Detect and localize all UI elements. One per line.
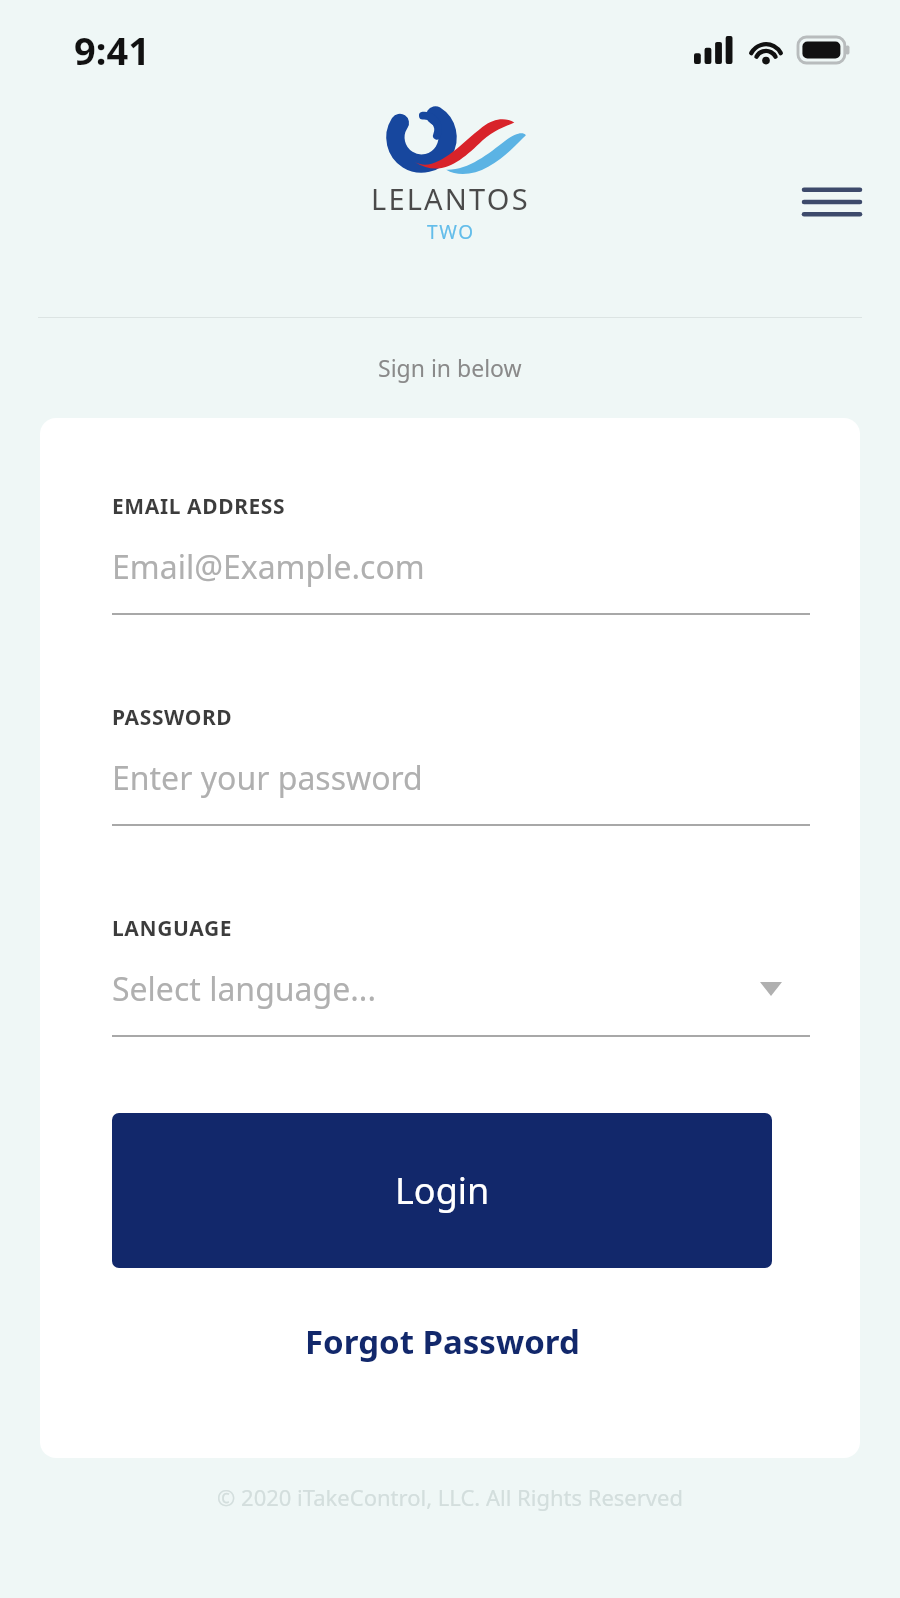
button[interactable]: Select language... — [112, 965, 810, 1013]
staticText: Sign in below — [378, 352, 522, 383]
staticText: TWO — [427, 219, 475, 245]
button[interactable]: Login — [112, 1113, 772, 1268]
staticText: Select language... — [112, 967, 377, 1011]
staticText: Enter your password — [112, 756, 423, 800]
staticText: © 2020 iTakeControl, LLC. All Rights Res… — [217, 1482, 683, 1512]
staticText: 9:41 — [74, 24, 150, 76]
staticText: EMAIL ADDRESS — [112, 492, 286, 521]
staticText: Login — [395, 1166, 490, 1215]
button[interactable]: Enter your password — [112, 754, 810, 802]
staticText: Email@Example.com — [112, 545, 425, 589]
staticText: PASSWORD — [112, 703, 233, 732]
button[interactable]: Forgot Password — [112, 1296, 772, 1386]
button[interactable]: Email@Example.com — [112, 543, 810, 591]
staticText: Forgot Password — [305, 1319, 580, 1364]
staticText: LELANTOS — [371, 179, 530, 218]
button[interactable]: Menu — [800, 170, 864, 234]
staticText: LANGUAGE — [112, 914, 233, 943]
